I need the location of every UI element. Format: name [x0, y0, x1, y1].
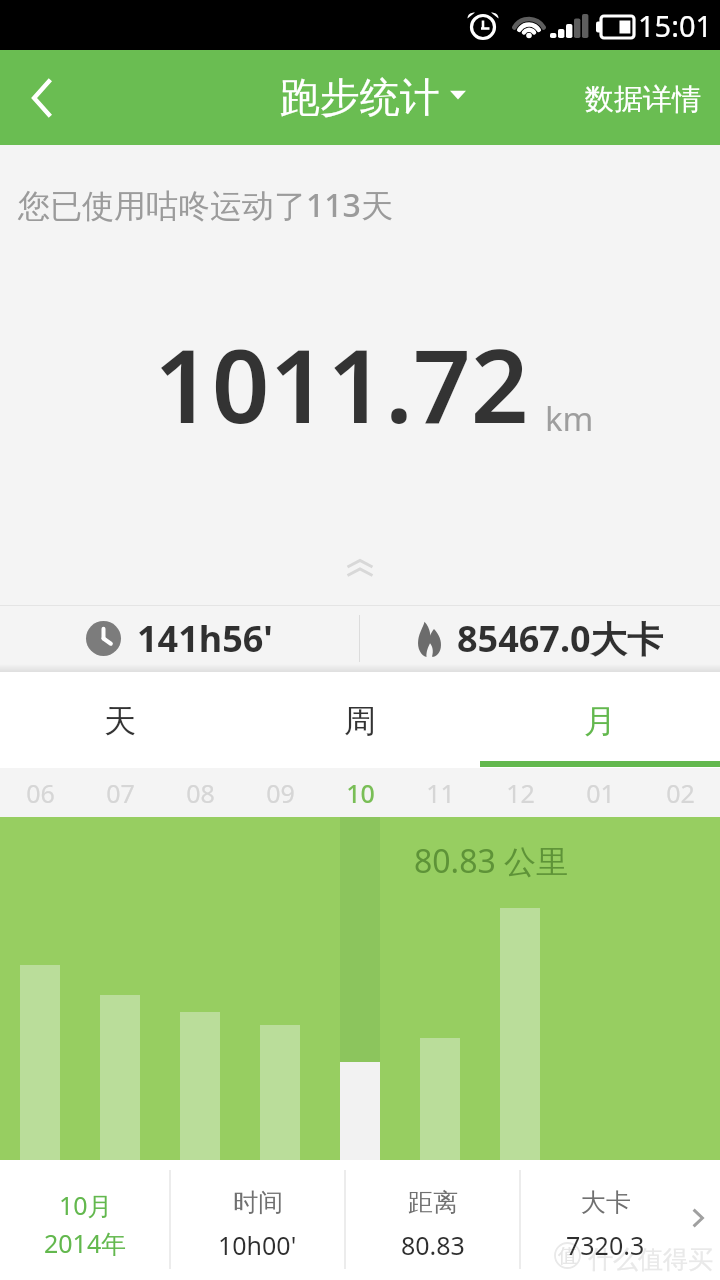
staticText: 10月: [59, 1188, 113, 1222]
staticText: 11: [426, 776, 455, 810]
staticText: 10h00': [218, 1228, 297, 1262]
staticText: 80.83 公里: [414, 839, 569, 883]
button[interactable]: 距离: [345, 1160, 520, 1280]
button[interactable]: 数据详情: [565, 50, 720, 145]
button[interactable]: 80.83 公里: [0, 817, 720, 1160]
staticText: 跑步统计: [280, 72, 440, 122]
staticText: 月: [584, 701, 616, 741]
staticText: 值: [558, 1244, 577, 1268]
button[interactable]: Next month: [675, 1195, 720, 1240]
staticText: 天: [104, 701, 136, 741]
staticText: 10: [346, 776, 375, 810]
staticText: 80.83: [401, 1228, 465, 1262]
staticText: 06: [26, 776, 55, 810]
staticText: 12: [506, 776, 535, 810]
button[interactable]: 月: [480, 672, 720, 768]
staticText: 15:01: [638, 6, 713, 45]
staticText: 08: [186, 776, 215, 810]
staticText: km: [545, 396, 594, 441]
staticText: 大卡: [581, 1187, 631, 1218]
staticText: 数据详情: [585, 81, 701, 118]
staticText: 02: [666, 776, 695, 810]
staticText: 07: [106, 776, 135, 810]
staticText: 什么值得买: [588, 1244, 713, 1275]
staticText: 周: [344, 701, 376, 741]
staticText: 141h56': [137, 614, 273, 663]
staticText: 1011.72: [154, 315, 529, 453]
staticText: 时间: [233, 1187, 283, 1218]
button[interactable]: 周: [240, 672, 480, 768]
button[interactable]: Back: [0, 50, 84, 145]
button[interactable]: 10月: [0, 1160, 170, 1280]
staticText: 距离: [408, 1187, 458, 1218]
button[interactable]: 跑步统计: [255, 50, 465, 145]
button[interactable]: Expand details: [320, 545, 400, 590]
staticText: 2014年: [44, 1226, 127, 1260]
button[interactable]: 时间: [170, 1160, 345, 1280]
button[interactable]: 天: [0, 672, 240, 768]
button[interactable]: 85467.0大卡: [360, 605, 720, 672]
staticText: 您已使用咕咚运动了113天: [18, 183, 393, 227]
staticText: 09: [266, 776, 295, 810]
button[interactable]: 141h56': [0, 605, 359, 672]
staticText: 85467.0大卡: [457, 614, 663, 663]
staticText: 7320.3: [566, 1228, 645, 1262]
button[interactable]: 大卡: [520, 1160, 690, 1280]
staticText: 01: [586, 776, 615, 810]
